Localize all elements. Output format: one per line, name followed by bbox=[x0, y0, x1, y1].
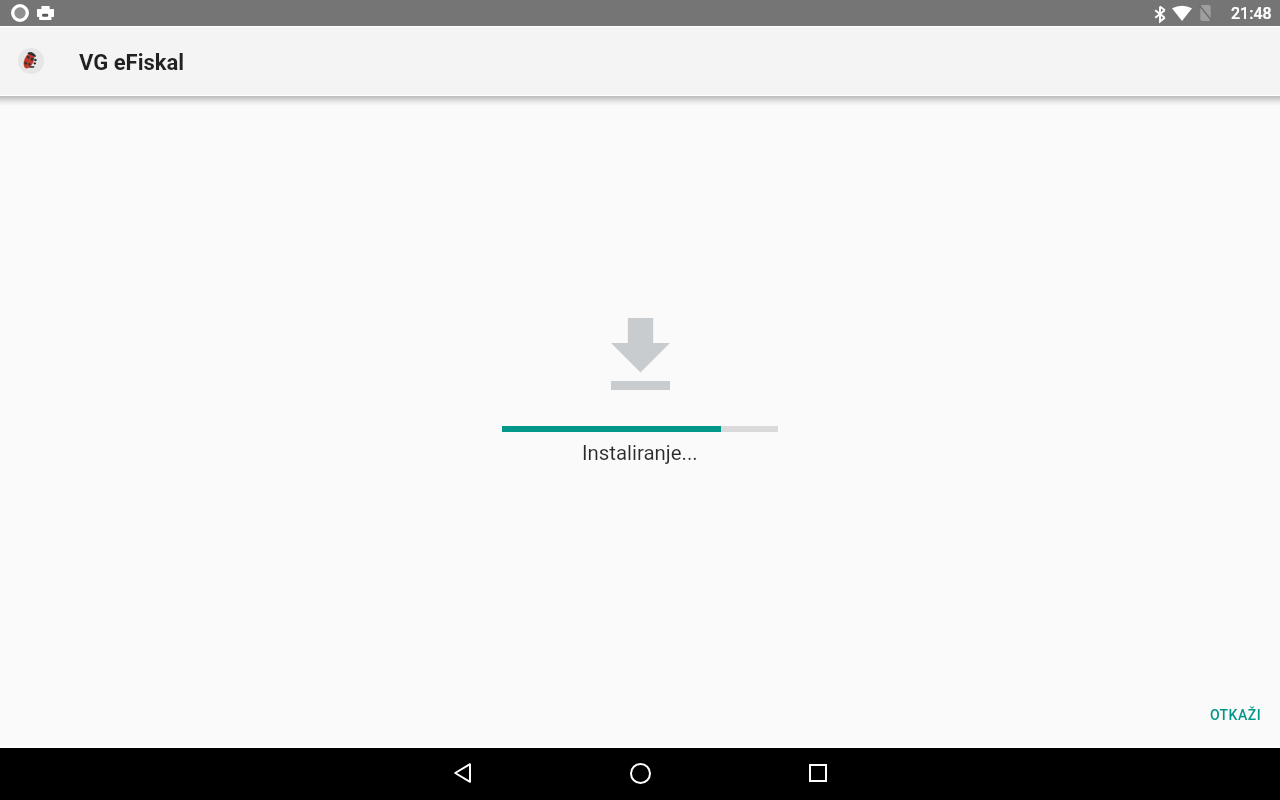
staticText: 21:48 bbox=[1231, 4, 1272, 23]
button[interactable]: Back bbox=[373, 746, 551, 800]
button[interactable]: OTKAŽI bbox=[1186, 695, 1280, 735]
button[interactable]: Recent apps bbox=[729, 746, 907, 800]
button[interactable]: Home bbox=[551, 746, 729, 800]
staticText: VG eFiskal bbox=[79, 50, 185, 76]
staticText: OTKAŽI bbox=[1210, 707, 1262, 723]
staticText: Instaliranje... bbox=[582, 441, 698, 465]
